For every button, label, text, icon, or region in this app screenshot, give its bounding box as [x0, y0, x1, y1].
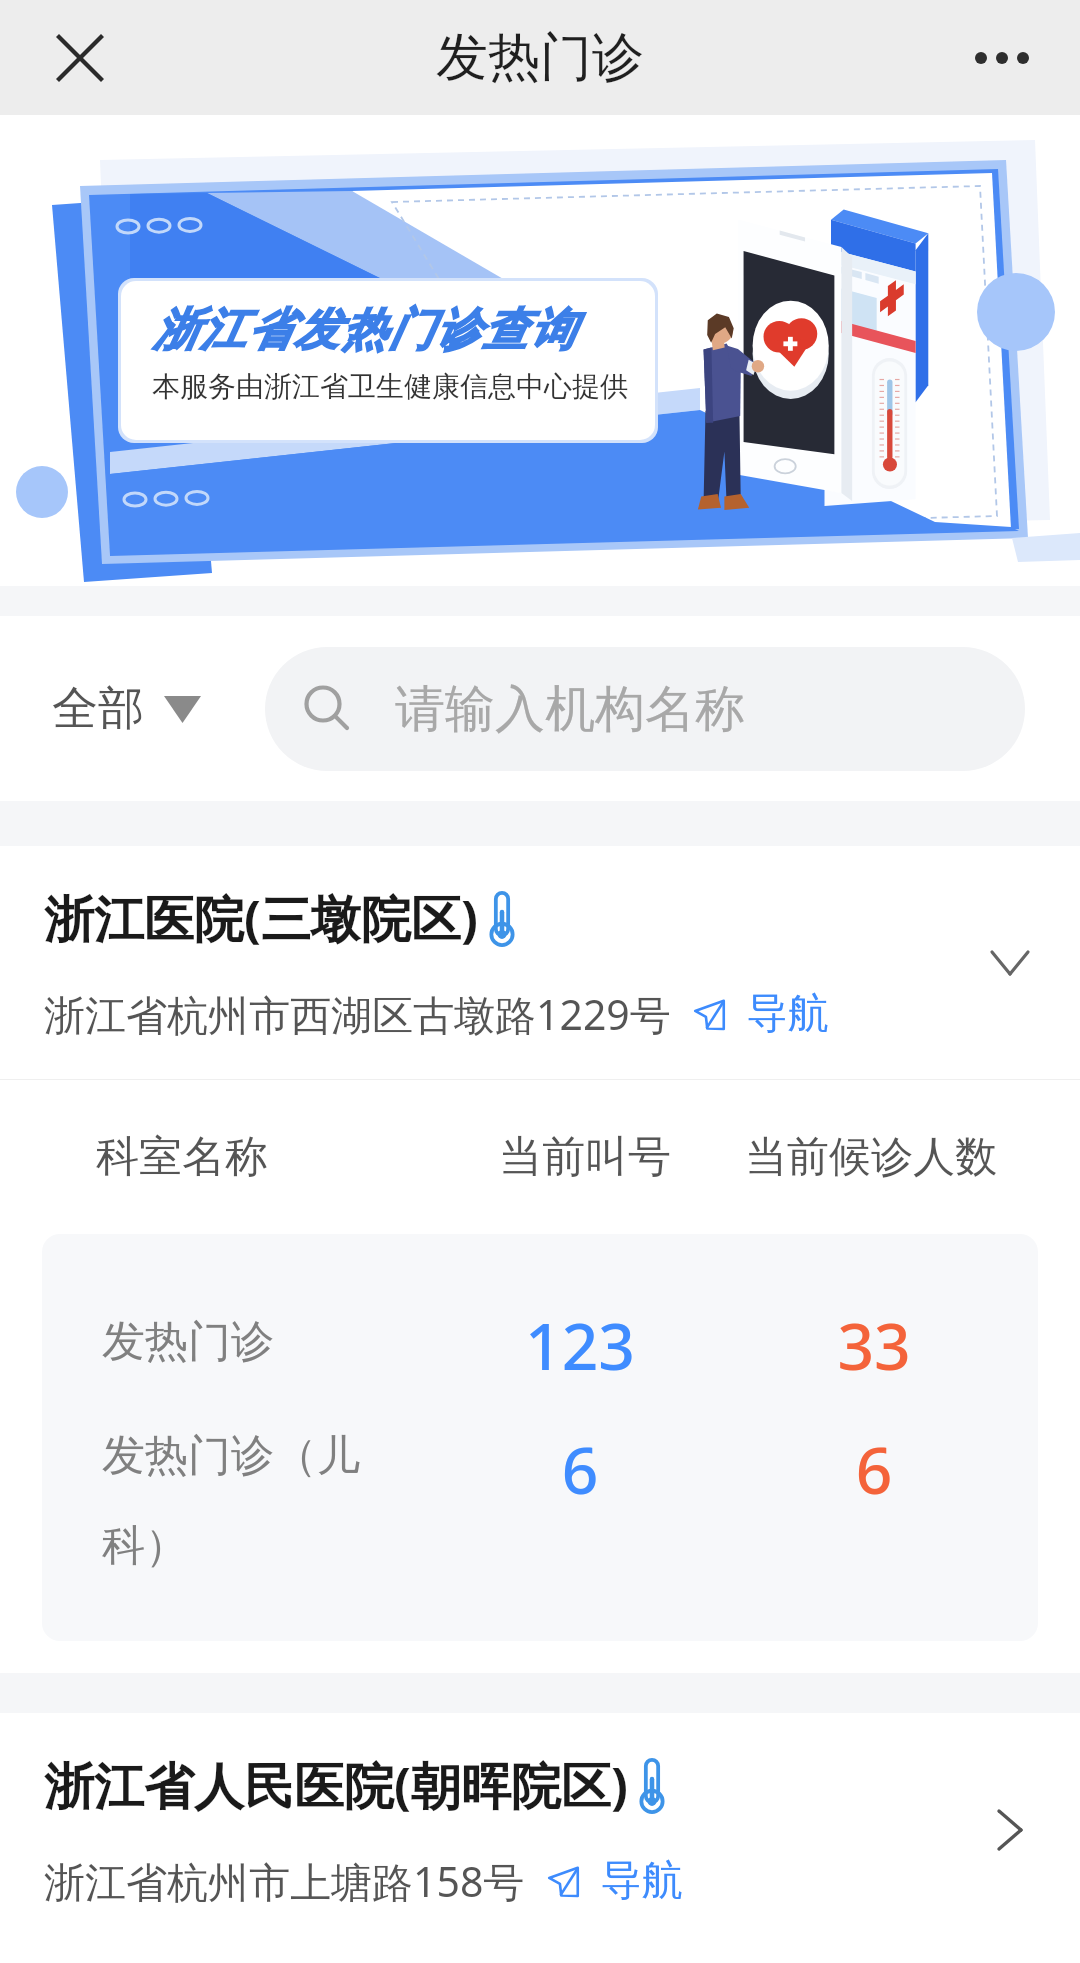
- button[interactable]: 全部: [52, 680, 201, 738]
- staticText: 浙江省杭州市西湖区古墩路1229号: [44, 986, 671, 1042]
- staticText: 当前叫号: [499, 1130, 671, 1184]
- button[interactable]: 浙江省人民医院(朝晖院区): [0, 1713, 1080, 1946]
- staticText: 发热门诊: [102, 1315, 274, 1369]
- staticText: 浙江省发热门诊查询: [152, 302, 575, 359]
- staticText: 发热门诊（儿: [102, 1429, 360, 1483]
- staticText: 发热门诊: [436, 25, 644, 91]
- staticText: 全部: [52, 680, 144, 738]
- button[interactable]: 请输入机构名称: [265, 647, 1025, 771]
- staticText: 6: [734, 1426, 1014, 1513]
- staticText: 浙江省杭州市上塘路158号: [44, 1853, 525, 1909]
- button[interactable]: Close: [37, 15, 123, 101]
- button[interactable]: 浙江医院(三墩院区): [0, 846, 1080, 1079]
- staticText: 浙江省人民医院(朝晖院区): [44, 1751, 628, 1819]
- staticText: 请输入机构名称: [395, 678, 745, 741]
- other: Collapse: [980, 933, 1040, 993]
- staticText: 导航: [601, 1855, 683, 1907]
- staticText: 本服务由浙江省卫生健康信息中心提供: [152, 369, 628, 404]
- staticText: 当前候诊人数: [745, 1131, 997, 1184]
- staticText: 导航: [747, 988, 829, 1040]
- other: Expand: [980, 1800, 1040, 1860]
- staticText: 33: [734, 1302, 1014, 1382]
- button[interactable]: More options: [946, 15, 1058, 101]
- staticText: 科）: [102, 1519, 188, 1573]
- staticText: 6: [440, 1426, 720, 1513]
- staticText: 浙江医院(三墩院区): [44, 884, 478, 952]
- staticText: 123: [440, 1302, 720, 1382]
- staticText: 科室名称: [96, 1130, 268, 1184]
